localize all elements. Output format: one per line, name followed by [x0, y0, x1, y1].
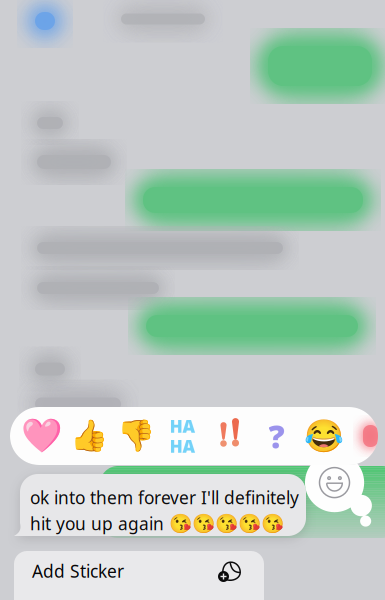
staticText: ? [268, 415, 284, 457]
staticText: 😂 [303, 418, 343, 454]
button[interactable]: Thumbs down [112, 407, 159, 465]
button[interactable]: Add Sticker [14, 551, 264, 600]
staticText: HA [169, 414, 195, 437]
button[interactable]: Add sticker [302, 453, 376, 527]
button[interactable]: Question [253, 407, 300, 465]
button[interactable]: Heart [18, 407, 65, 465]
button[interactable]: More [347, 407, 385, 465]
staticText: 👎 [116, 418, 154, 453]
button[interactable]: Haha [159, 407, 206, 465]
button[interactable]: Exclamation [206, 407, 253, 465]
staticText: HA [169, 434, 195, 457]
staticText: 🩷 [20, 417, 62, 455]
button[interactable]: Laughing [300, 407, 347, 465]
staticText: Add Sticker [32, 559, 124, 582]
button[interactable]: Thumbs up [65, 407, 112, 465]
staticText: ok into them forever I'll definitely [30, 486, 299, 509]
staticText: 😘😘😘😘😘 [169, 513, 284, 534]
staticText: 👍 [69, 418, 107, 453]
staticText: hit you up again [30, 512, 169, 535]
